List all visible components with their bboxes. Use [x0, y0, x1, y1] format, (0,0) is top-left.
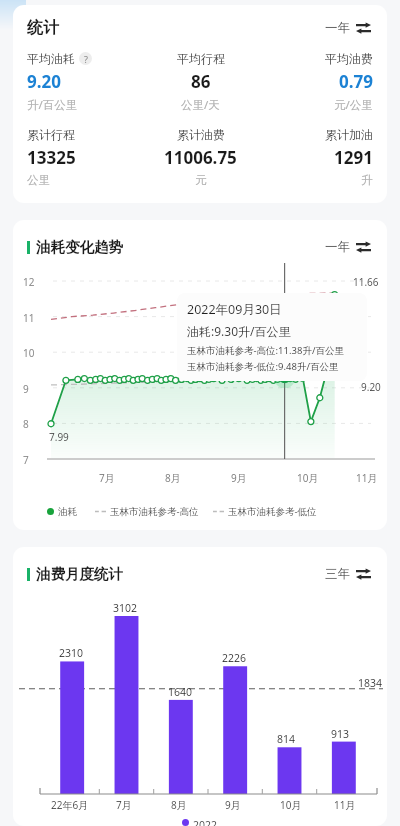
staticText: 10月	[280, 798, 302, 812]
staticText: 一年	[325, 239, 350, 255]
staticText: 2310	[59, 646, 84, 660]
staticText: 平均油耗	[27, 51, 75, 66]
staticText: 公里	[27, 173, 50, 187]
button[interactable]: 累计加油	[258, 127, 373, 187]
staticText: 814	[277, 732, 296, 746]
staticText: 7.99	[49, 430, 69, 444]
staticText: ?	[84, 53, 88, 65]
staticText: 公里/天	[181, 97, 220, 113]
staticText: 1640	[168, 685, 193, 699]
staticText: 8月	[165, 471, 181, 485]
staticText: 9月	[231, 471, 247, 485]
staticText: 油耗	[58, 506, 77, 518]
staticText: 86	[191, 70, 211, 93]
staticText: 升/百公里	[27, 97, 78, 113]
staticText: 10月	[297, 471, 319, 485]
staticText: 8月	[171, 798, 187, 812]
staticText: 10	[23, 346, 35, 360]
staticText: 9.20	[27, 70, 61, 93]
staticText: 元/公里	[334, 97, 373, 113]
staticText: 913	[331, 727, 350, 741]
staticText: 三年	[325, 566, 350, 582]
staticText: 11006.75	[164, 146, 237, 169]
button[interactable]: 累计行程	[27, 127, 143, 187]
staticText: 元	[195, 173, 207, 187]
button[interactable]: 平均油耗	[27, 51, 143, 113]
staticText: 一年	[325, 20, 350, 36]
staticText: 12	[23, 275, 35, 289]
staticText: 平均行程	[177, 51, 225, 66]
staticText: 11月	[356, 471, 378, 485]
button[interactable]: 平均行程	[143, 51, 258, 113]
staticText: 累计油费	[177, 127, 225, 142]
button[interactable]: 平均油费	[258, 51, 373, 113]
staticText: 8	[23, 417, 29, 431]
button[interactable]: Change range 一年	[323, 16, 373, 40]
staticText: 1834	[358, 676, 383, 690]
button[interactable]: 累计油费	[143, 127, 258, 187]
staticText: 统计	[27, 18, 59, 38]
staticText: 11月	[334, 798, 356, 812]
staticText: 7月	[116, 798, 132, 812]
staticText: 11.66	[353, 275, 379, 289]
staticText: 7月	[99, 471, 115, 485]
staticText: 油耗变化趋势	[36, 238, 123, 256]
staticText: 升	[361, 173, 373, 187]
staticText: 2022	[193, 818, 218, 826]
staticText: 9月	[225, 798, 241, 812]
staticText: 油耗:9.30升/百公里	[187, 323, 291, 339]
staticText: 11	[23, 311, 35, 325]
staticText: 油费月度统计	[36, 565, 123, 583]
staticText: 累计加油	[325, 127, 373, 142]
staticText: 13325	[27, 146, 76, 169]
staticText: 玉林市油耗参考-高位	[110, 505, 199, 518]
staticText: 22年6月	[51, 798, 89, 812]
staticText: 玉林市油耗参考-低位:9.48升/百公里	[187, 360, 339, 373]
button[interactable]: Change range 三年	[323, 562, 373, 586]
staticText: 7	[23, 453, 29, 467]
staticText: 玉林市油耗参考-高位:11.38升/百公里	[187, 344, 344, 357]
staticText: 0.79	[339, 70, 373, 93]
staticText: 玉林市油耗参考-低位	[228, 505, 317, 518]
button[interactable]: Change range 一年	[323, 235, 373, 259]
staticText: 3102	[113, 601, 138, 615]
staticText: 2022年09月30日	[187, 301, 282, 318]
staticText: 9	[23, 382, 29, 396]
staticText: 累计行程	[27, 127, 75, 142]
staticText: 9.20	[361, 380, 381, 394]
staticText: 平均油费	[325, 51, 373, 66]
staticText: 1291	[334, 146, 373, 169]
staticText: 2226	[222, 651, 247, 665]
